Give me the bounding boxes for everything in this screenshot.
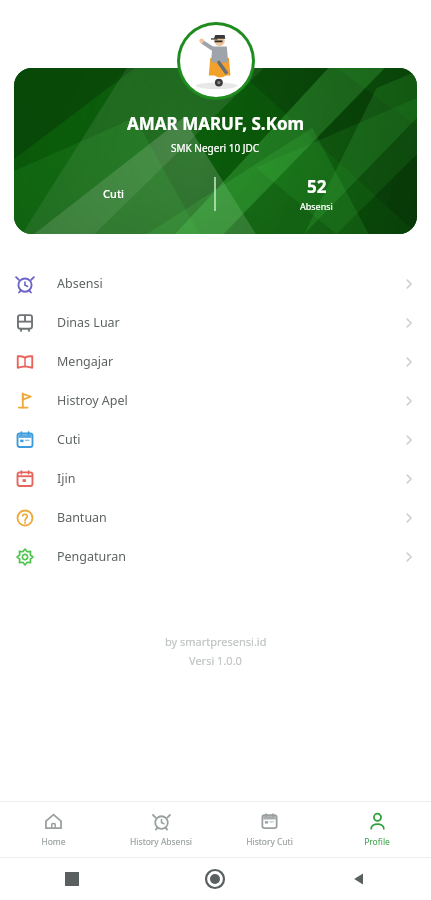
button[interactable]: Profile [323,802,431,857]
button[interactable]: Mengajar [0,342,431,381]
button[interactable]: History Absensi [107,802,215,857]
staticText: Histroy Apel [57,392,128,409]
staticText: Cuti [57,431,81,448]
button[interactable]: Pengaturan [0,537,431,576]
staticText: Cuti [103,186,125,201]
staticText: 52 [307,175,327,198]
staticText: Pengaturan [57,548,126,565]
button[interactable]: Histroy Apel [0,381,431,420]
staticText: Versi 1.0.0 [189,653,242,668]
button[interactable]: History Cuti [215,802,323,857]
staticText: History Absensi [130,836,192,848]
staticText: SMK Negeri 10 JDC [171,141,260,155]
staticText: Dinas Luar [57,314,120,331]
staticText: Mengajar [57,353,114,370]
staticText: History Cuti [246,836,293,848]
staticText: Absensi [300,200,333,212]
button[interactable]: Home [0,802,107,857]
staticText: Absensi [57,275,103,292]
staticText: Ijin [57,470,76,487]
staticText: Home [41,836,66,848]
staticText: by smartpresensi.id [165,634,267,649]
button[interactable]: Absensi [0,264,431,303]
button[interactable]: Bantuan [0,498,431,537]
button[interactable]: Dinas Luar [0,303,431,342]
staticText: Profile [364,836,390,848]
staticText: Bantuan [57,509,107,526]
other: Profile photo [180,25,252,97]
button[interactable]: Ijin [0,459,431,498]
button[interactable]: Cuti [0,420,431,459]
staticText: AMAR MARUF, S.Kom [127,112,305,135]
